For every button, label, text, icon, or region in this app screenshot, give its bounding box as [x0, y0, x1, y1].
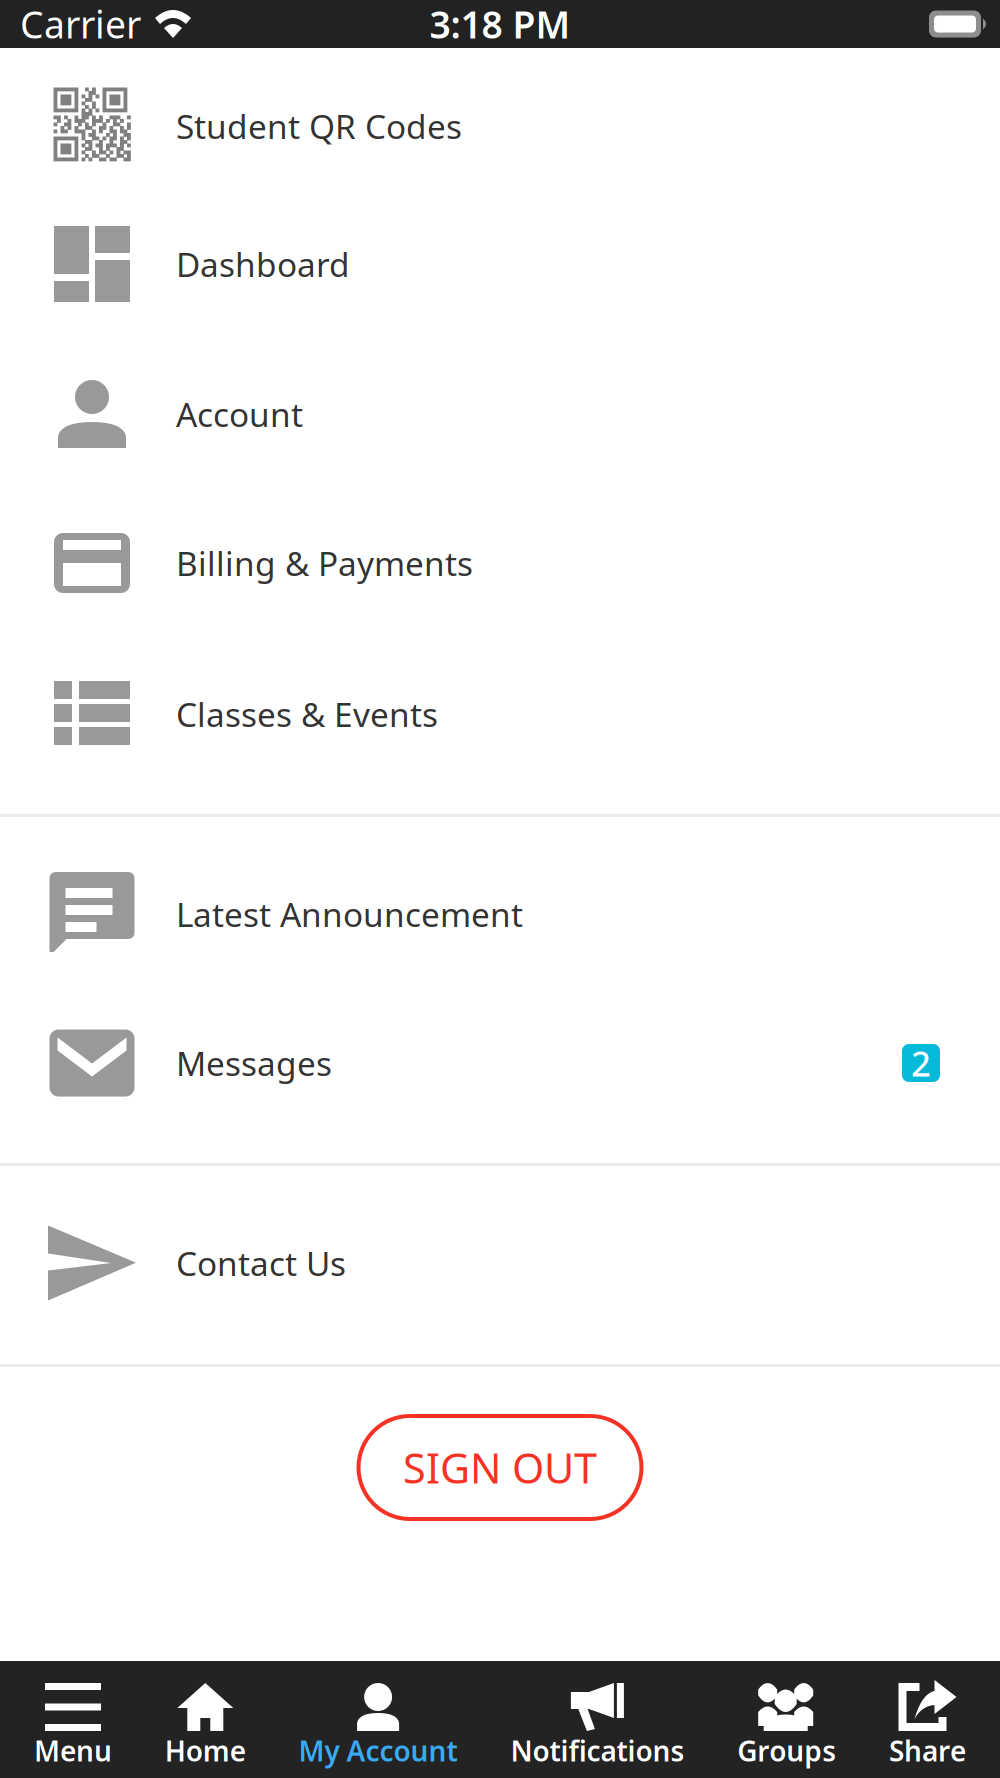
- button[interactable]: Latest Announcement: [0, 876, 1000, 952]
- staticText: Carrier: [20, 0, 141, 49]
- staticText: 3:18 PM: [429, 0, 570, 49]
- button[interactable]: Menu: [34, 1661, 112, 1778]
- button[interactable]: Billing & Payments: [0, 525, 1000, 601]
- staticText: Messages: [176, 1041, 332, 1085]
- button[interactable]: Dashboard: [0, 226, 1000, 302]
- button[interactable]: Student QR Codes: [0, 88, 1000, 164]
- button[interactable]: SIGN OUT: [358, 1416, 641, 1519]
- staticText: Latest Announcement: [176, 892, 523, 936]
- button[interactable]: Messages: [0, 1025, 1000, 1101]
- button[interactable]: Account: [0, 376, 1000, 452]
- staticText: Notifications: [510, 1732, 684, 1769]
- staticText: SIGN OUT: [403, 1440, 597, 1495]
- staticText: Home: [165, 1732, 246, 1769]
- button[interactable]: Groups: [737, 1661, 836, 1778]
- staticText: Contact Us: [176, 1241, 346, 1285]
- button[interactable]: Contact Us: [0, 1225, 1000, 1301]
- button[interactable]: Share: [889, 1661, 966, 1778]
- button[interactable]: Home: [165, 1661, 246, 1778]
- staticText: Groups: [737, 1732, 836, 1769]
- staticText: Student QR Codes: [176, 104, 462, 148]
- staticText: My Account: [299, 1732, 458, 1769]
- button[interactable]: Notifications: [510, 1661, 684, 1778]
- staticText: Share: [889, 1732, 966, 1769]
- staticText: Menu: [34, 1732, 112, 1769]
- staticText: Billing & Payments: [176, 541, 473, 585]
- staticText: Dashboard: [176, 242, 350, 286]
- staticText: Account: [176, 392, 303, 436]
- staticText: 2: [911, 1040, 931, 1086]
- staticText: Classes & Events: [176, 692, 438, 736]
- button[interactable]: Classes & Events: [0, 676, 1000, 752]
- button[interactable]: My Account: [299, 1661, 458, 1778]
